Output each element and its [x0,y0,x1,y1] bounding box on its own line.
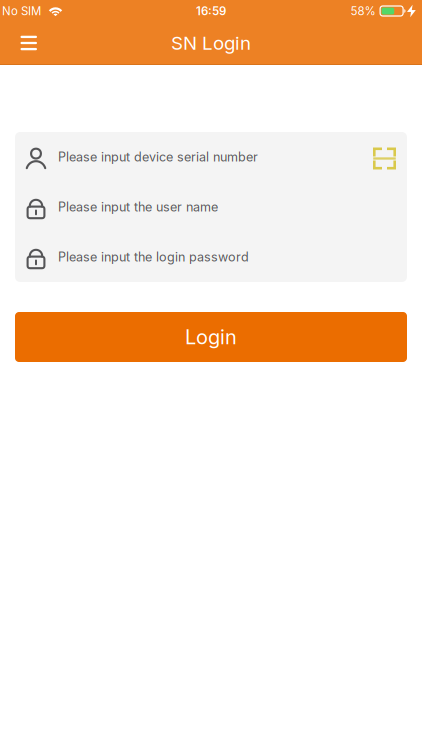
staticText: 58% [350,4,375,18]
staticText: Please input the user name [58,199,218,215]
staticText: SN Login [171,32,251,54]
staticText: No SIM [2,4,41,18]
staticText: 16:59 [196,4,226,18]
staticText: Login [185,325,237,349]
button[interactable]: Login [15,312,407,362]
button[interactable]: Please input the user name [15,182,407,232]
button[interactable]: Menu [0,30,37,56]
button[interactable]: Please input the login password [15,232,407,282]
staticText: Please input device serial number [58,149,258,165]
staticText: Please input the login password [58,249,249,265]
button[interactable]: Please input device serial number [15,132,373,182]
button[interactable]: Scan serial number [373,146,407,168]
